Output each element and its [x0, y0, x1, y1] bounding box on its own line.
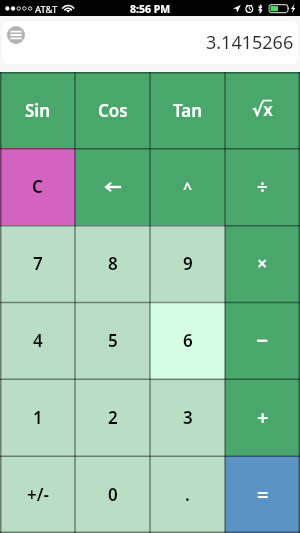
button[interactable]: 8: [75, 225, 150, 302]
staticText: Sin: [25, 99, 51, 122]
staticText: 3: [183, 406, 193, 429]
button[interactable]: Cos: [75, 72, 150, 148]
staticText: ^: [183, 177, 193, 199]
staticText: 2: [108, 406, 118, 429]
staticText: 4: [33, 329, 43, 352]
staticText: √x: [252, 98, 273, 121]
button[interactable]: Tan: [150, 72, 225, 148]
staticText: +: [257, 404, 269, 431]
button[interactable]: 6: [150, 302, 225, 379]
button[interactable]: Sin: [0, 72, 75, 148]
button[interactable]: 2: [75, 379, 150, 456]
button[interactable]: +/-: [0, 456, 75, 533]
staticText: 9: [183, 252, 193, 275]
button[interactable]: 1: [0, 379, 75, 456]
staticText: Tan: [173, 99, 203, 122]
staticText: 5: [108, 329, 118, 352]
staticText: 7: [33, 252, 43, 275]
staticText: +/-: [27, 483, 49, 506]
staticText: 1: [33, 406, 43, 429]
staticText: −: [256, 326, 269, 355]
staticText: ÷: [257, 174, 268, 200]
button[interactable]: 5: [75, 302, 150, 379]
button[interactable]: 7: [0, 225, 75, 302]
button[interactable]: 4: [0, 302, 75, 379]
button[interactable]: Menu: [7, 26, 25, 44]
staticText: ×: [257, 251, 268, 276]
staticText: AT&T: [35, 3, 58, 16]
button[interactable]: .: [150, 456, 225, 533]
button[interactable]: Divide: [225, 148, 300, 225]
button[interactable]: 9: [150, 225, 225, 302]
button[interactable]: Minus: [225, 302, 300, 379]
staticText: =: [257, 481, 269, 508]
staticText: .: [185, 483, 190, 506]
staticText: Cos: [98, 99, 128, 122]
button[interactable]: Backspace: [75, 148, 150, 225]
button[interactable]: Square root: [225, 72, 300, 148]
button[interactable]: Equals: [225, 456, 300, 533]
staticText: 3.1415266: [206, 30, 294, 55]
button[interactable]: Plus: [225, 379, 300, 456]
button[interactable]: 3: [150, 379, 225, 456]
button[interactable]: Power: [150, 148, 225, 225]
staticText: 8: [108, 252, 118, 275]
staticText: 6: [183, 329, 193, 352]
staticText: 8:56 PM: [0, 2, 300, 16]
button[interactable]: C: [0, 148, 75, 225]
staticText: C: [32, 175, 43, 198]
staticText: 0: [108, 483, 118, 506]
button[interactable]: 0: [75, 456, 150, 533]
button[interactable]: Multiply: [225, 225, 300, 302]
